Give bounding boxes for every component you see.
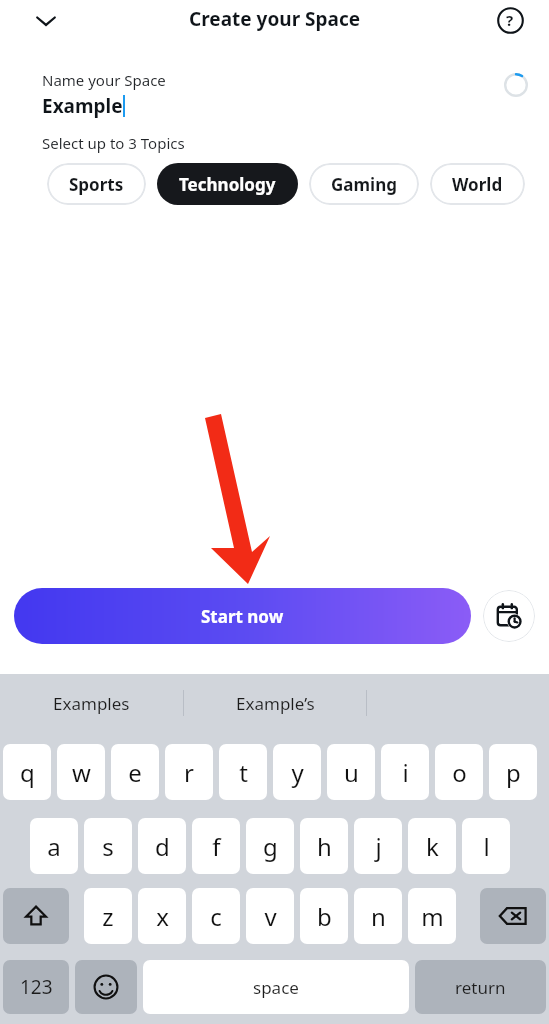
button[interactable]: Examples (0, 674, 183, 732)
button[interactable]: Shift (3, 888, 69, 944)
staticText: w (72, 756, 91, 789)
button[interactable]: h (300, 818, 348, 874)
button[interactable]: k (408, 818, 456, 874)
button[interactable]: s (84, 818, 132, 874)
staticText: ? (506, 10, 514, 30)
staticText: b (317, 900, 332, 933)
staticText: v (264, 900, 277, 933)
button[interactable]: q (3, 744, 51, 800)
button[interactable]: Technology (157, 163, 298, 205)
staticText: Example’s (236, 692, 315, 715)
staticText: c (210, 900, 222, 933)
button[interactable]: space (143, 960, 409, 1014)
button[interactable]: d (138, 818, 186, 874)
button[interactable]: c (192, 888, 240, 944)
staticText: l (483, 830, 490, 863)
button[interactable]: w (57, 744, 105, 800)
button[interactable]: Start now (14, 588, 471, 644)
button[interactable]: j (354, 818, 402, 874)
button[interactable]: Example’s (184, 674, 366, 732)
button[interactable]: t (219, 744, 267, 800)
staticText: i (402, 756, 409, 789)
button[interactable]: m (408, 888, 456, 944)
staticText: h (317, 830, 332, 863)
button[interactable]: Sports (47, 163, 146, 205)
button[interactable]: y (273, 744, 321, 800)
button[interactable]: Backspace (480, 888, 546, 944)
staticText: e (128, 756, 142, 789)
staticText: Gaming (331, 173, 397, 196)
button[interactable]: x (138, 888, 186, 944)
staticText: Example (42, 93, 123, 119)
button[interactable]: u (327, 744, 375, 800)
staticText: u (344, 756, 359, 789)
staticText: Create your Space (189, 6, 361, 32)
button[interactable]: b (300, 888, 348, 944)
staticText: Technology (179, 173, 276, 196)
button[interactable]: Gaming (309, 163, 419, 205)
staticText: Select up to 3 Topics (42, 133, 185, 153)
button[interactable]: return (415, 960, 546, 1014)
staticText: p (506, 756, 521, 789)
button[interactable]: a (30, 818, 78, 874)
staticText: return (455, 976, 506, 999)
button[interactable]: World (430, 163, 525, 205)
staticText: t (239, 756, 248, 789)
button[interactable]: Emoji (75, 960, 137, 1014)
staticText: n (371, 900, 386, 933)
staticText: space (253, 976, 299, 999)
staticText: Name your Space (42, 70, 166, 90)
staticText: Examples (53, 692, 130, 715)
button[interactable]: r (165, 744, 213, 800)
staticText: 123 (20, 974, 53, 1000)
button[interactable]: p (489, 744, 537, 800)
button[interactable]: z (84, 888, 132, 944)
staticText: k (426, 830, 439, 863)
button[interactable]: o (435, 744, 483, 800)
staticText: m (421, 900, 444, 933)
button[interactable]: Close (24, 0, 68, 42)
button[interactable]: f (192, 818, 240, 874)
staticText: World (452, 173, 503, 196)
button[interactable]: g (246, 818, 294, 874)
button[interactable]: 123 (3, 960, 69, 1014)
staticText: a (47, 830, 61, 863)
button[interactable]: l (462, 818, 510, 874)
button[interactable]: Help (490, 0, 530, 40)
staticText: g (263, 830, 278, 863)
staticText: Start now (201, 605, 284, 628)
staticText: y (291, 756, 304, 789)
button[interactable]: v (246, 888, 294, 944)
staticText: z (102, 900, 114, 933)
staticText: s (102, 830, 114, 863)
button[interactable]: n (354, 888, 402, 944)
staticText: d (155, 830, 170, 863)
staticText: j (375, 830, 382, 863)
button[interactable]: Schedule Space (483, 590, 535, 642)
staticText: q (20, 756, 35, 789)
staticText: r (184, 756, 194, 789)
button[interactable]: e (111, 744, 159, 800)
staticText: f (212, 830, 221, 863)
staticText: Sports (69, 173, 124, 196)
staticText: o (452, 756, 467, 789)
button[interactable]: i (381, 744, 429, 800)
staticText: x (156, 900, 169, 933)
